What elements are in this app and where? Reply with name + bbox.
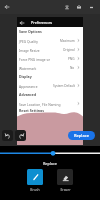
staticText: Save Location, File Naming — [19, 102, 61, 106]
staticText: Display — [19, 74, 32, 79]
button[interactable]: Back — [0, 0, 14, 14]
button[interactable]: Replace — [68, 131, 95, 140]
button[interactable]: Image Resize — [17, 45, 83, 54]
staticText: Reset Settings — [19, 108, 45, 112]
button[interactable]: Download — [61, 1, 73, 13]
button[interactable]: JPEG Quality — [17, 36, 83, 45]
staticText: Eraser — [60, 187, 71, 192]
button[interactable]: Force PNG image se — [17, 54, 83, 63]
button[interactable]: More options — [85, 1, 97, 13]
button[interactable]: Close preferences — [17, 18, 26, 27]
staticText: Appearance — [19, 84, 38, 88]
staticText: Force PNG image se — [19, 57, 51, 61]
button[interactable]: Export — [73, 1, 85, 13]
staticText: Original — [63, 48, 75, 52]
button[interactable]: Watermark — [17, 63, 83, 72]
staticText: Image Resize — [19, 48, 40, 52]
button[interactable]: Save Location, File Naming — [17, 99, 83, 108]
staticText: Replace — [43, 161, 57, 166]
button[interactable]: Brush — [27, 169, 43, 192]
staticText: Preferences — [31, 20, 53, 25]
button[interactable]: Reset Settings — [17, 108, 83, 112]
staticText: Save Options — [19, 29, 42, 34]
staticText: PNG — [68, 57, 75, 61]
staticText: Advanced — [19, 92, 37, 97]
staticText: System Default — [53, 84, 75, 88]
staticText: Maximum — [60, 39, 75, 43]
button[interactable]: Redo — [15, 130, 26, 141]
button[interactable]: Appearance — [17, 81, 83, 90]
staticText: Watermark — [19, 66, 37, 70]
button[interactable]: Undo — [2, 130, 13, 141]
button[interactable]: Eraser — [57, 169, 73, 192]
staticText: No — [70, 66, 75, 70]
staticText: Replace — [74, 133, 89, 138]
staticText: JPEG Quality — [19, 39, 39, 43]
staticText: Brush — [30, 187, 40, 192]
